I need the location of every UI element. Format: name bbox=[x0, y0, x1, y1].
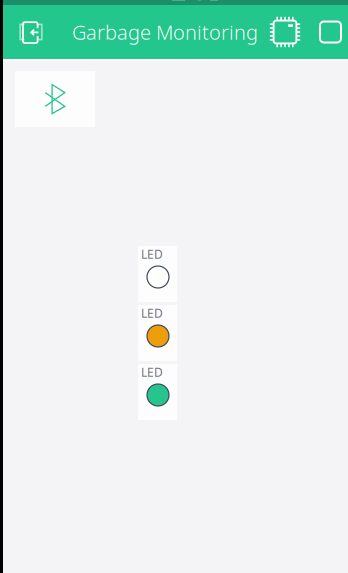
button[interactable]: Stop bbox=[320, 5, 348, 59]
staticText: Garbage Monitoring bbox=[72, 19, 258, 45]
staticText: LED bbox=[141, 364, 163, 380]
button[interactable]: Exit bbox=[0, 5, 72, 59]
staticText: LED bbox=[141, 246, 163, 262]
button[interactable]: LED bbox=[138, 305, 177, 361]
button[interactable]: LED bbox=[138, 364, 177, 420]
button[interactable]: Device bbox=[269, 5, 301, 59]
button[interactable]: LED bbox=[138, 246, 177, 302]
button[interactable]: Bluetooth bbox=[15, 71, 95, 127]
staticText: LED bbox=[141, 305, 163, 321]
